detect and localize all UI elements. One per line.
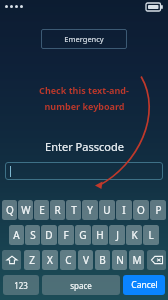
staticText: K bbox=[131, 228, 138, 242]
button[interactable]: B bbox=[95, 250, 110, 270]
button[interactable] bbox=[5, 162, 163, 180]
staticText: Y bbox=[87, 203, 93, 217]
button[interactable]: N bbox=[112, 250, 127, 270]
button[interactable]: 123 bbox=[3, 275, 39, 295]
staticText: 123 bbox=[14, 280, 28, 291]
staticText: N bbox=[116, 253, 124, 267]
staticText: R bbox=[54, 203, 61, 217]
button[interactable]: F bbox=[58, 225, 74, 245]
staticText: X bbox=[47, 253, 53, 267]
staticText: F bbox=[63, 228, 69, 242]
button[interactable]: X bbox=[42, 250, 58, 270]
staticText: E bbox=[39, 203, 45, 217]
staticText: J bbox=[116, 228, 119, 242]
button[interactable]: P bbox=[150, 200, 166, 220]
button[interactable]: space bbox=[42, 275, 120, 295]
button[interactable]: Q bbox=[2, 200, 17, 220]
button[interactable]: A bbox=[9, 225, 24, 245]
button[interactable]: E bbox=[34, 200, 49, 220]
staticText: U bbox=[103, 203, 111, 217]
staticText: O bbox=[137, 203, 145, 217]
staticText: Enter Passcode bbox=[45, 139, 124, 154]
button[interactable]: H bbox=[92, 225, 108, 245]
button[interactable]: W bbox=[18, 200, 33, 220]
staticText: G bbox=[79, 228, 87, 242]
button[interactable]: T bbox=[66, 200, 81, 220]
staticText: space bbox=[70, 280, 92, 291]
staticText: I bbox=[122, 203, 126, 217]
staticText: L bbox=[148, 228, 154, 242]
staticText: S bbox=[30, 228, 36, 242]
staticText: Cancel bbox=[131, 279, 158, 291]
button[interactable]: Emergency bbox=[41, 29, 127, 49]
button[interactable]: K bbox=[126, 225, 142, 245]
staticText: C bbox=[65, 253, 72, 267]
button[interactable]: L bbox=[143, 225, 159, 245]
button[interactable]: M bbox=[129, 250, 144, 270]
staticText: Emergency bbox=[64, 34, 104, 44]
button[interactable]: Z bbox=[24, 250, 40, 270]
button[interactable]: V bbox=[78, 250, 93, 270]
button[interactable]: O bbox=[133, 200, 149, 220]
button[interactable]: D bbox=[41, 225, 57, 245]
staticText: Q bbox=[6, 203, 14, 217]
button[interactable]: Y bbox=[82, 200, 98, 220]
staticText: D bbox=[45, 228, 53, 242]
button[interactable]: Delete bbox=[147, 250, 166, 270]
button[interactable]: S bbox=[25, 225, 40, 245]
staticText: B bbox=[99, 253, 106, 267]
button[interactable]: C bbox=[60, 250, 76, 270]
staticText: T bbox=[71, 203, 77, 217]
button[interactable]: Cancel bbox=[123, 275, 165, 295]
button[interactable]: R bbox=[50, 200, 65, 220]
staticText: Z bbox=[29, 253, 35, 267]
staticText: number keyboard bbox=[44, 100, 125, 112]
button[interactable]: G bbox=[75, 225, 91, 245]
staticText: M bbox=[132, 253, 142, 267]
button[interactable]: J bbox=[109, 225, 125, 245]
staticText: W bbox=[21, 203, 31, 217]
staticText: P bbox=[155, 203, 162, 217]
button[interactable]: I bbox=[116, 200, 132, 220]
staticText: H bbox=[96, 228, 104, 242]
staticText: A bbox=[13, 228, 20, 242]
staticText: Check this text-and- bbox=[39, 84, 129, 96]
button[interactable]: Shift bbox=[2, 250, 21, 270]
staticText: V bbox=[83, 253, 89, 267]
button[interactable]: U bbox=[99, 200, 115, 220]
